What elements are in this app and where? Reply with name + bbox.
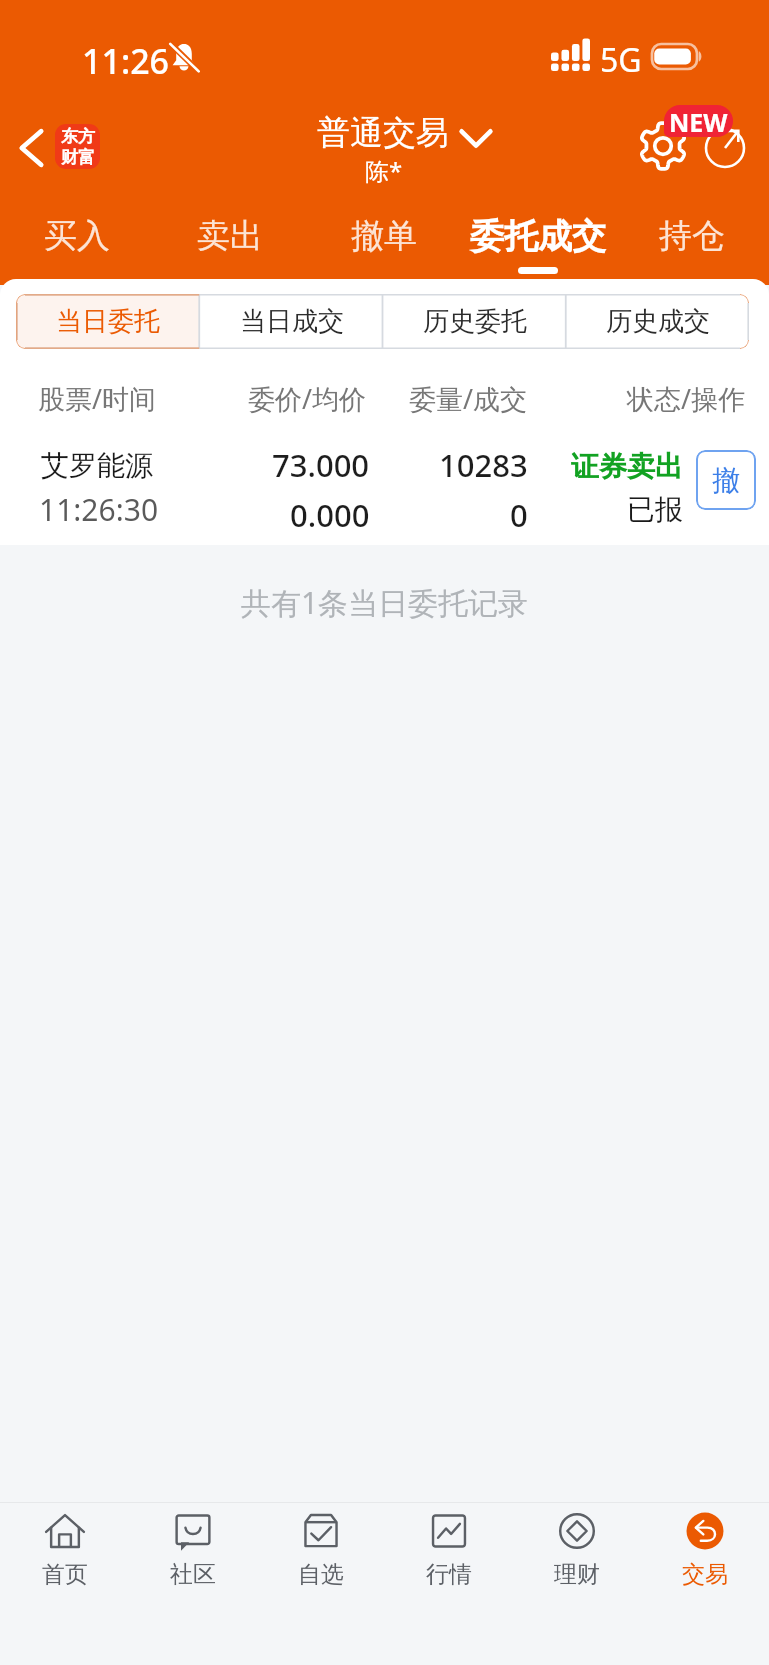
staticText: 交易 xyxy=(682,1560,728,1589)
staticText: 已报 xyxy=(627,492,683,527)
button[interactable]: 东方 xyxy=(55,124,100,169)
staticText: 陈* xyxy=(365,154,403,187)
staticText: 证券卖出 xyxy=(571,449,683,484)
staticText: 11:26:30 xyxy=(39,489,159,530)
staticText: 当日成交 xyxy=(240,305,344,338)
staticText: 73.000 xyxy=(272,444,370,486)
button[interactable]: Refresh xyxy=(700,123,750,173)
staticText: 艾罗能源 xyxy=(41,448,153,483)
button[interactable]: Back xyxy=(8,118,54,178)
button[interactable]: 艾罗能源 xyxy=(0,436,769,540)
staticText: 共有1条当日委托记录 xyxy=(0,582,769,623)
staticText: 首页 xyxy=(42,1560,88,1589)
staticText: 股票/时间 xyxy=(38,380,157,417)
staticText: 普通交易 xyxy=(317,112,449,154)
staticText: 当日委托 xyxy=(56,305,160,338)
staticText: 撤 xyxy=(712,463,740,498)
staticText: 理财 xyxy=(554,1560,600,1589)
button[interactable]: 普通交易 xyxy=(311,108,498,158)
staticText: 社区 xyxy=(170,1560,216,1589)
staticText: 委价/均价 xyxy=(248,380,367,417)
button[interactable]: 历史委托 xyxy=(383,294,566,349)
button[interactable]: 买入 xyxy=(0,215,153,279)
button[interactable]: 当日成交 xyxy=(200,294,383,349)
button[interactable]: 委托成交 xyxy=(461,215,615,279)
staticText: 财富 xyxy=(61,147,95,168)
staticText: 买入 xyxy=(44,215,110,257)
button[interactable]: Settings xyxy=(638,121,688,171)
staticText: 卖出 xyxy=(197,215,263,257)
staticText: 历史委托 xyxy=(423,305,527,338)
staticText: NEW xyxy=(669,105,728,137)
staticText: 委量/成交 xyxy=(409,380,528,417)
staticText: 0 xyxy=(510,494,528,536)
button[interactable]: 行情 xyxy=(385,1510,513,1589)
button[interactable]: 撤 xyxy=(696,450,756,510)
staticText: 0.000 xyxy=(290,494,370,536)
button[interactable]: 交易 xyxy=(641,1510,769,1589)
button[interactable]: 社区 xyxy=(129,1510,257,1589)
staticText: 持仓 xyxy=(659,215,725,257)
staticText: 5G xyxy=(600,38,642,82)
staticText: 东方 xyxy=(61,126,95,147)
staticText: 状态/操作 xyxy=(627,380,746,417)
button[interactable]: 历史成交 xyxy=(566,294,749,349)
staticText: 11:26 xyxy=(82,38,170,84)
button[interactable]: 撤单 xyxy=(307,215,461,279)
staticText: 委托成交 xyxy=(470,215,606,258)
button[interactable]: 自选 xyxy=(257,1510,385,1589)
staticText: 撤单 xyxy=(351,215,417,257)
staticText: 行情 xyxy=(426,1560,472,1589)
button[interactable]: 当日委托 xyxy=(16,294,200,349)
staticText: 10283 xyxy=(439,444,528,486)
staticText: 历史成交 xyxy=(606,305,710,338)
button[interactable]: 首页 xyxy=(0,1510,129,1589)
staticText: 自选 xyxy=(298,1560,344,1589)
button[interactable]: 卖出 xyxy=(153,215,307,279)
button[interactable]: 理财 xyxy=(513,1510,641,1589)
button[interactable]: 持仓 xyxy=(615,215,769,279)
